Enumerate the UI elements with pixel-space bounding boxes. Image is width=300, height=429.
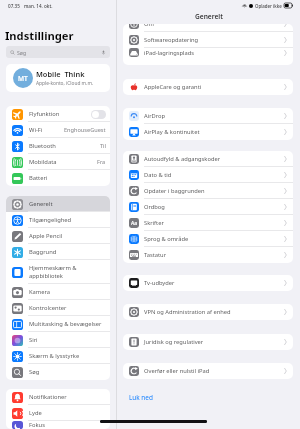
button[interactable]: Sprog & område	[123, 231, 293, 247]
staticText: AirPlay & kontinuitet	[144, 128, 200, 136]
staticText: Søg	[29, 368, 40, 376]
staticText: Apple Pencil	[29, 232, 63, 240]
button[interactable]: Søg	[6, 364, 110, 380]
button[interactable]: Skærm & lysstyrke	[6, 348, 110, 364]
button[interactable]: Juridisk og regulativer	[123, 334, 293, 350]
button[interactable]: Notifikationer	[6, 389, 110, 405]
button[interactable]: Apple Pencil	[6, 228, 110, 244]
staticText: AppleCare og garanti	[144, 83, 202, 91]
button[interactable]: Overfør eller nulstil iPad	[123, 363, 293, 379]
button[interactable]: MT	[6, 64, 110, 92]
button[interactable]: Ordbog	[123, 199, 293, 215]
button[interactable]: Kamera	[6, 284, 110, 300]
staticText: Fokus	[29, 421, 45, 429]
staticText: Apple-konto, iCloud m.m.	[36, 80, 94, 87]
button[interactable]: Om	[123, 24, 293, 32]
staticText: Om	[144, 24, 154, 28]
staticText: Generelt	[195, 12, 223, 21]
staticText: appbibliotek	[29, 272, 63, 280]
staticText: Bluetooth	[29, 142, 56, 150]
staticText: Oplader ikke	[255, 3, 282, 9]
button[interactable]: AppleCare og garanti	[123, 79, 293, 95]
button[interactable]: AirPlay & kontinuitet	[123, 124, 293, 140]
staticText: Fra	[97, 158, 106, 166]
button[interactable]: Tv-udbyder	[123, 275, 293, 291]
staticText: AirDrop	[144, 112, 166, 120]
staticText: Siri	[29, 336, 38, 344]
staticText: Tastatur	[144, 251, 167, 259]
staticText: Dato & tid	[144, 171, 172, 179]
button[interactable]: Siri	[6, 332, 110, 348]
staticText: Sprog & område	[144, 235, 189, 243]
staticText: 07.35	[8, 3, 20, 9]
staticText: Luk ned	[129, 393, 153, 402]
button[interactable]: VPN og Administration af enhed	[123, 304, 293, 320]
staticText: Baggrund	[29, 248, 57, 256]
staticText: Overfør eller nulstil iPad	[144, 367, 210, 375]
staticText: VPN og Administration af enhed	[144, 308, 231, 316]
button[interactable]: Hjemmeskærm &	[6, 260, 110, 284]
button[interactable]: Dato & tid	[123, 167, 293, 183]
button[interactable]: Wi-Fi	[6, 122, 110, 138]
staticText: Skærm & lysstyrke	[29, 352, 80, 360]
staticText: Kontrolcenter	[29, 304, 67, 312]
staticText: Til	[100, 142, 106, 150]
button[interactable]: Autoudfyld & adgangskoder	[123, 151, 293, 167]
button[interactable]: Baggrund	[6, 244, 110, 260]
staticText: Opdater i baggrunden	[144, 187, 205, 195]
button[interactable]: Bluetooth	[6, 138, 110, 154]
staticText: Lyde	[29, 409, 42, 417]
staticText: Generelt	[29, 200, 53, 208]
button[interactable]: Opdater i baggrunden	[123, 183, 293, 199]
staticText: Indstillinger	[5, 28, 74, 43]
staticText: man. 14. okt.	[24, 3, 53, 9]
staticText: Flyfunktion	[29, 110, 60, 118]
button[interactable]: Lyde	[6, 405, 110, 421]
staticText: Wi-Fi	[29, 126, 43, 134]
button[interactable]: Tastatur	[123, 247, 293, 263]
staticText: Multitasking & bevægelser	[29, 320, 102, 328]
staticText: Ordbog	[144, 203, 165, 211]
button[interactable]: Søg	[6, 46, 110, 58]
button[interactable]: AirDrop	[123, 108, 293, 124]
staticText: Kamera	[29, 288, 51, 296]
staticText: Notifikationer	[29, 393, 67, 401]
staticText: iPad-lagringsplads	[144, 49, 195, 57]
button[interactable]: Multitasking & bevægelser	[6, 316, 110, 332]
staticText: EnghouseGuest	[64, 126, 106, 134]
button[interactable]: Softwareopdatering	[123, 32, 293, 48]
staticText: Softwareopdatering	[144, 36, 198, 44]
button[interactable]: iPad-lagringsplads	[123, 48, 293, 57]
button[interactable]: Mobildata	[6, 154, 110, 170]
staticText: Mobildata	[29, 158, 57, 166]
staticText: Aa	[131, 220, 138, 227]
staticText: Hjemmeskærm &	[29, 264, 77, 272]
button[interactable]: Tilgængelighed	[6, 212, 110, 228]
button[interactable]: Kontrolcenter	[6, 300, 110, 316]
button[interactable]: Luk ned	[129, 393, 153, 402]
button[interactable]: Generelt	[6, 196, 110, 212]
staticText: MT	[18, 74, 28, 83]
staticText: Juridisk og regulativer	[144, 338, 204, 346]
staticText: Autoudfyld & adgangskoder	[144, 155, 221, 163]
staticText: Skrifter	[144, 219, 164, 227]
staticText: Søg	[17, 49, 27, 56]
staticText: Batteri	[29, 174, 48, 182]
button[interactable]: Aa	[123, 215, 293, 231]
button[interactable]: Batteri	[6, 170, 110, 186]
button[interactable]: Fokus	[6, 421, 110, 429]
staticText: Tv-udbyder	[144, 279, 175, 287]
button[interactable]: Flyfunktion	[6, 106, 110, 122]
staticText: Mobile Think	[36, 69, 85, 79]
staticText: Tilgængelighed	[29, 216, 72, 224]
